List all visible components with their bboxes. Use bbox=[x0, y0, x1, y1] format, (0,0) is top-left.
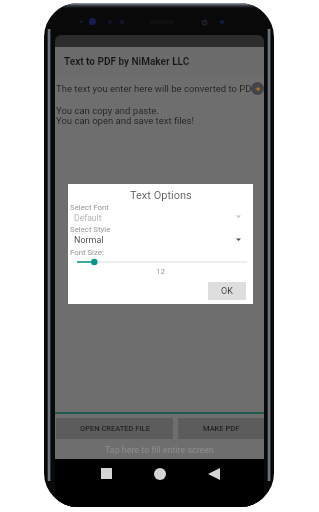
button[interactable]: OK bbox=[208, 282, 246, 300]
button[interactable]: Recent apps bbox=[95, 462, 118, 485]
staticText: You can copy and paste. bbox=[56, 105, 159, 116]
staticText: Text to PDF by NiMaker LLC bbox=[64, 56, 190, 68]
staticText: OK bbox=[221, 286, 233, 297]
staticText: The text you enter here will be converte… bbox=[56, 83, 257, 94]
button[interactable] bbox=[75, 256, 247, 268]
staticText: You can open and save text files! bbox=[56, 115, 194, 126]
button[interactable]: Insert bbox=[251, 82, 264, 95]
staticText: OPEN CREATED FILE bbox=[80, 424, 150, 433]
staticText: Select Style bbox=[70, 225, 111, 234]
button[interactable]: MAKE PDF bbox=[178, 418, 264, 439]
staticText: 12 bbox=[156, 267, 165, 276]
staticText: Default bbox=[74, 213, 102, 223]
staticText: Select Font bbox=[70, 203, 109, 212]
staticText: Font Size: bbox=[70, 248, 104, 257]
staticText: SAMSUNG bbox=[150, 19, 175, 25]
button[interactable]: OPEN CREATED FILE bbox=[56, 418, 173, 439]
staticText: Tap here to fill entire screen bbox=[105, 445, 214, 455]
staticText: Text Options bbox=[130, 189, 192, 202]
staticText: Normal bbox=[74, 235, 104, 246]
button[interactable]: Home bbox=[148, 462, 171, 485]
button[interactable]: Text to PDF by NiMaker LLC bbox=[55, 47, 264, 77]
button[interactable]: Back bbox=[202, 462, 225, 485]
staticText: MAKE PDF bbox=[203, 424, 240, 433]
